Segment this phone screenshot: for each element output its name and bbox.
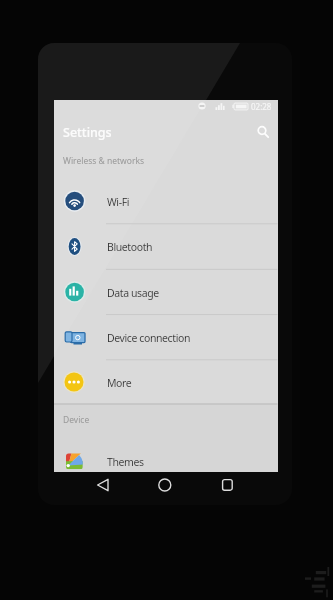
staticText: More (107, 376, 132, 390)
staticText: Wireless & networks (63, 155, 145, 167)
staticText: Themes (107, 455, 144, 469)
staticText: Device (63, 414, 90, 426)
staticText: Device connection (107, 331, 190, 345)
staticText: Settings (63, 124, 112, 141)
button[interactable]: More (54, 360, 278, 405)
staticText: Bluetooth (107, 240, 153, 254)
button[interactable] (254, 122, 272, 140)
button[interactable]: Bluetooth (54, 224, 278, 269)
staticText: Data usage (107, 286, 159, 300)
button[interactable]: Data usage (54, 270, 278, 315)
button[interactable]: Wi-Fi (54, 179, 278, 224)
button[interactable]: Device connection (54, 315, 278, 360)
staticText: 02:28 (251, 101, 272, 112)
button[interactable]: Themes (54, 439, 278, 484)
staticText: Wi-Fi (107, 195, 130, 209)
